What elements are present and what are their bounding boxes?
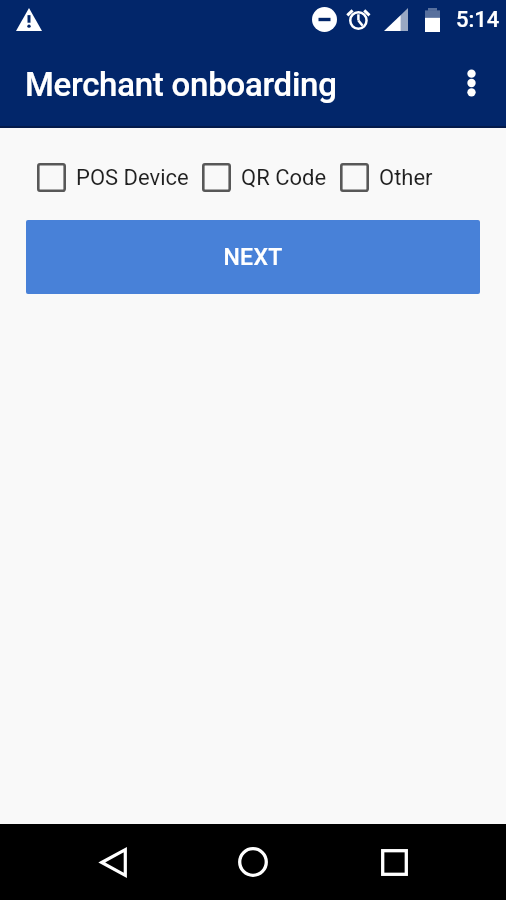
staticText: NEXT [223, 244, 283, 271]
staticText: QR Code [241, 165, 327, 191]
staticText: Other [379, 165, 433, 191]
button[interactable]: More options [447, 58, 496, 107]
button[interactable]: Back [85, 834, 141, 890]
button[interactable]: Other [340, 163, 433, 192]
staticText: Merchant onboarding [25, 65, 337, 104]
button[interactable]: NEXT [26, 220, 480, 294]
staticText: POS Device [76, 165, 189, 191]
button[interactable]: Home [225, 834, 281, 890]
button[interactable]: QR Code [202, 163, 327, 192]
button[interactable]: Recent apps [366, 834, 422, 890]
staticText: 5:14 [456, 7, 500, 33]
button[interactable]: POS Device [37, 163, 189, 192]
